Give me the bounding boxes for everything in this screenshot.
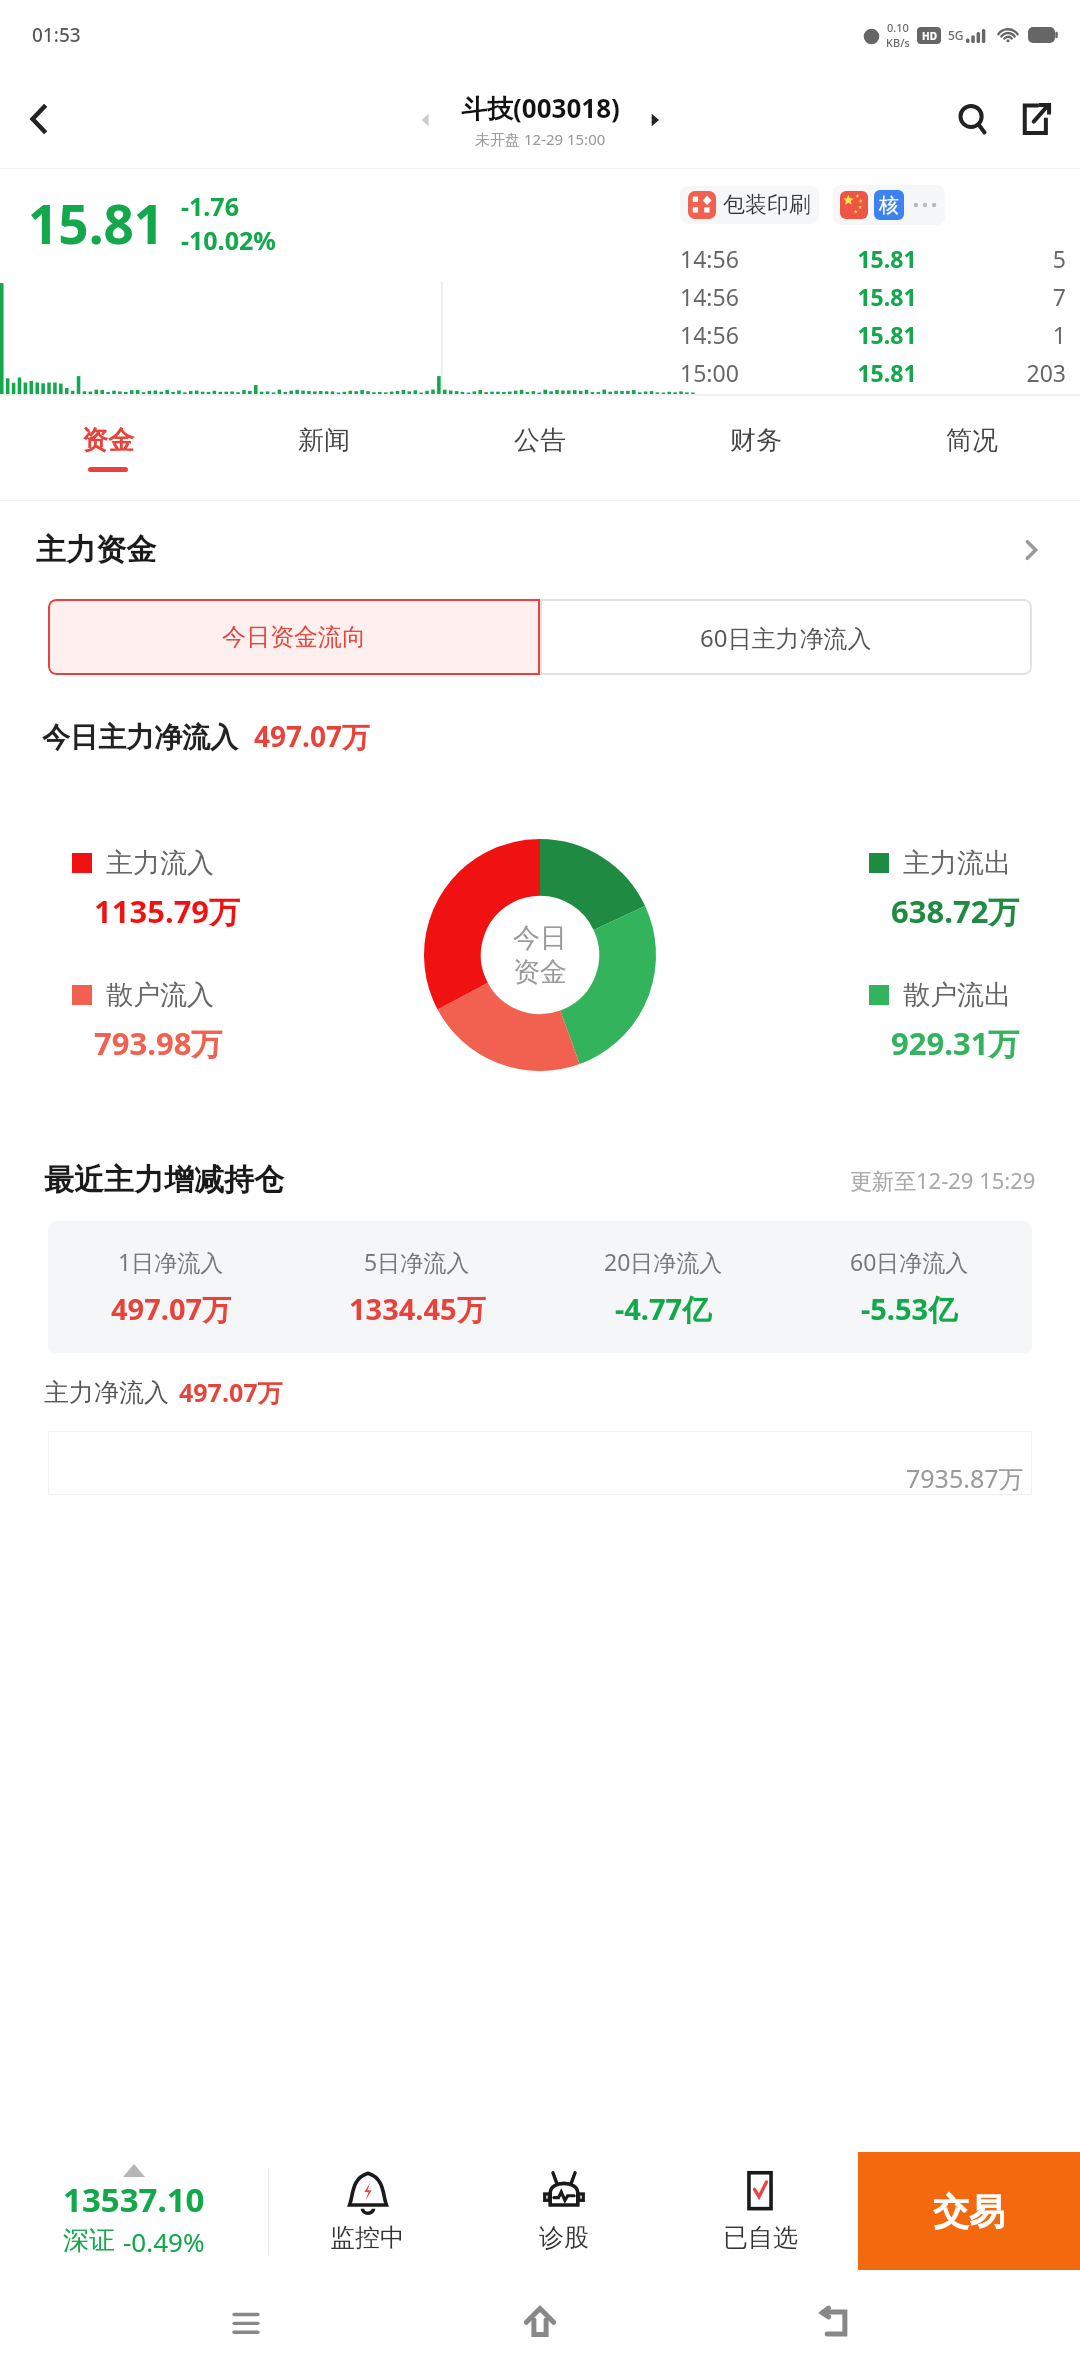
button[interactable]: 资金 <box>0 396 216 500</box>
button[interactable]: 交易 <box>858 2152 1080 2270</box>
staticText: -0.49% <box>123 2224 205 2259</box>
staticText: 7 <box>956 281 1066 312</box>
staticText: 14:56 <box>680 243 818 274</box>
staticText: 01:53 <box>32 22 81 48</box>
staticText: -10.02% <box>181 223 276 257</box>
staticText: 新闻 <box>298 424 350 457</box>
button[interactable]: 主力资金 <box>0 501 1080 599</box>
staticText: 5 <box>956 243 1066 274</box>
staticText: 包装印刷 <box>723 191 811 219</box>
staticText: 1135.79万 <box>94 890 241 932</box>
staticText: 资金 <box>513 955 567 989</box>
staticText: 20日净流入 <box>604 1246 723 1277</box>
staticText: 15.81 <box>818 243 956 274</box>
staticText: -1.76 <box>181 189 239 223</box>
staticText: KB/s <box>886 35 910 50</box>
staticText: 5日净流入 <box>364 1246 470 1277</box>
staticText: 核 <box>879 193 899 218</box>
staticText: 更新至12-29 15:29 <box>850 1165 1036 1195</box>
button[interactable]: 新闻 <box>216 396 432 500</box>
staticText: 497.07万 <box>179 1375 283 1409</box>
staticText: 7935.87万 <box>906 1461 1024 1495</box>
staticText: 散户流出 <box>903 978 1011 1012</box>
staticText: 已自选 <box>723 2222 798 2253</box>
staticText: 主力流入 <box>106 846 214 880</box>
staticText: 1 <box>956 319 1066 350</box>
button[interactable]: 核 <box>840 190 938 220</box>
staticText: 497.07万 <box>254 717 370 755</box>
staticText: 散户流入 <box>106 978 214 1012</box>
staticText: 主力资金 <box>36 531 156 569</box>
staticText: 简况 <box>946 424 998 457</box>
staticText: 929.31万 <box>891 1022 1020 1064</box>
staticText: 15.81 <box>818 357 956 388</box>
staticText: 13537.10 <box>63 2177 205 2222</box>
button[interactable]: 监控中 <box>269 2152 466 2270</box>
staticText: 深证 <box>63 2224 115 2257</box>
staticText: 公告 <box>514 424 566 457</box>
staticText: 诊股 <box>539 2222 589 2253</box>
button[interactable]: Home <box>492 2275 588 2371</box>
button[interactable]: 诊股 <box>466 2152 662 2270</box>
staticText: 今日主力净流入 <box>42 720 238 755</box>
button[interactable]: 60日主力净流入 <box>540 599 1032 675</box>
staticText: 497.07万 <box>111 1289 232 1329</box>
staticText: 15.81 <box>818 281 956 312</box>
staticText: 主力净流入 <box>44 1377 169 1408</box>
staticText: 638.72万 <box>891 890 1020 932</box>
staticText: 今日 <box>513 921 567 955</box>
staticText: 监控中 <box>330 2222 405 2253</box>
staticText: 财务 <box>730 424 782 457</box>
staticText: 交易 <box>933 2189 1005 2234</box>
staticText: 1334.45万 <box>349 1289 486 1329</box>
staticText: 15.81 <box>818 319 956 350</box>
staticText: 0.10 <box>887 20 909 35</box>
staticText: 793.98万 <box>94 1022 223 1064</box>
button[interactable]: 公告 <box>432 396 648 500</box>
staticText: 斗技(003018) <box>461 90 620 126</box>
staticText: 203 <box>956 357 1066 388</box>
staticText: 今日资金流向 <box>222 622 366 652</box>
staticText: 60日净流入 <box>850 1246 969 1277</box>
staticText: 未开盘 12-29 15:00 <box>475 129 606 149</box>
button[interactable]: Share <box>1004 88 1066 150</box>
button[interactable]: Previous <box>415 109 437 131</box>
button[interactable]: Back <box>0 80 78 158</box>
staticText: 5G <box>948 27 964 43</box>
staticText: 15:00 <box>680 357 818 388</box>
staticText: -5.53亿 <box>861 1289 958 1329</box>
button[interactable]: 简况 <box>864 396 1080 500</box>
button[interactable]: 已自选 <box>662 2152 858 2270</box>
button[interactable]: Recents <box>198 2275 294 2371</box>
button[interactable]: Next <box>644 109 666 131</box>
button[interactable]: 财务 <box>648 396 864 500</box>
staticText: 15.81 <box>28 187 165 259</box>
staticText: -4.77亿 <box>615 1289 712 1329</box>
button[interactable]: 13537.10 <box>0 2152 268 2270</box>
staticText: 14:56 <box>680 319 818 350</box>
button[interactable]: Back <box>786 2275 882 2371</box>
staticText: HD <box>922 29 937 43</box>
staticText: 14:56 <box>680 281 818 312</box>
staticText: 1日净流入 <box>118 1246 224 1277</box>
button[interactable]: 今日资金流向 <box>48 599 540 675</box>
staticText: 主力流出 <box>903 846 1011 880</box>
staticText: 60日主力净流入 <box>700 621 872 654</box>
button[interactable]: Search <box>942 88 1004 150</box>
staticText: 资金 <box>82 424 134 457</box>
staticText: 最近主力增减持仓 <box>44 1161 284 1199</box>
button[interactable]: 包装印刷 <box>688 191 811 219</box>
